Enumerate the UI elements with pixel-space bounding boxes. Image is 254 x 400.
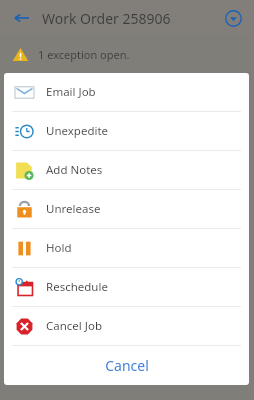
button[interactable]: More options xyxy=(222,7,244,29)
button[interactable]: Email Job xyxy=(4,73,249,111)
staticText: Email Job xyxy=(46,84,96,100)
button[interactable]: Unexpedite xyxy=(4,112,249,150)
button[interactable]: Cancel xyxy=(4,346,249,385)
staticText: Unrelease xyxy=(46,201,101,217)
staticText: Cancel xyxy=(105,356,149,375)
button[interactable]: Hold xyxy=(4,229,249,267)
staticText: Work Order 258906 xyxy=(42,9,171,28)
button[interactable]: Reschedule xyxy=(4,268,249,306)
button[interactable]: Back xyxy=(10,7,32,29)
staticText: Hold xyxy=(46,240,72,256)
staticText: Reschedule xyxy=(46,279,108,295)
button[interactable]: Cancel Job xyxy=(4,307,249,345)
staticText: Add Notes xyxy=(46,162,103,178)
button[interactable]: Add Notes xyxy=(4,151,249,189)
staticText: Cancel Job xyxy=(46,318,102,334)
button[interactable]: Unrelease xyxy=(4,190,249,228)
staticText: 1 exception open. xyxy=(38,47,130,62)
staticText: Unexpedite xyxy=(46,123,109,139)
